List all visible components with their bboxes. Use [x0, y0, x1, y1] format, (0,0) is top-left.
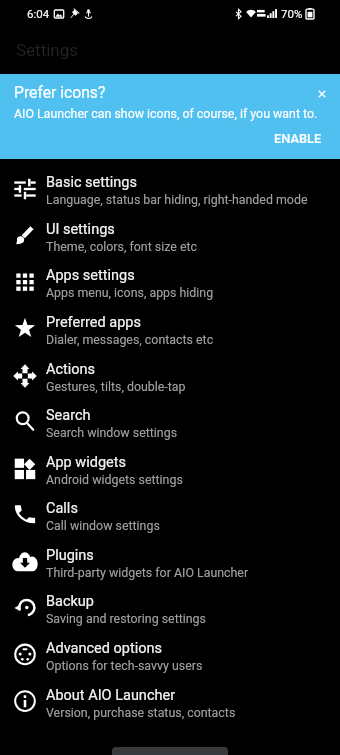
button[interactable]: About AIO Launcher — [0, 679, 340, 726]
staticText: App widgets — [46, 454, 126, 471]
staticText: Search window settings — [46, 425, 178, 440]
staticText: Prefer icons? — [14, 83, 106, 101]
staticText: UI settings — [46, 221, 115, 238]
staticText: Backup — [46, 593, 94, 610]
button[interactable]: Apps settings — [0, 259, 340, 306]
staticText: AIO Launcher can show icons, of course, … — [14, 106, 318, 121]
button[interactable]: Search — [0, 399, 340, 446]
staticText: Call window settings — [46, 518, 160, 533]
staticText: Apps settings — [46, 267, 135, 284]
staticText: About AIO Launcher — [46, 687, 176, 704]
staticText: Third-party widgets for AIO Launcher — [46, 565, 249, 580]
button[interactable]: App widgets — [0, 446, 340, 493]
staticText: Preferred apps — [46, 314, 141, 331]
button[interactable]: Preferred apps — [0, 306, 340, 353]
button[interactable]: Backup — [0, 585, 340, 632]
button[interactable]: Basic settings — [0, 166, 340, 213]
staticText: ENABLE — [274, 131, 322, 146]
staticText: Dialer, messages, contacts etc — [46, 332, 214, 347]
button[interactable]: UI settings — [0, 213, 340, 260]
button[interactable]: Advanced options — [0, 632, 340, 679]
staticText: Basic settings — [46, 174, 137, 191]
staticText: Search — [46, 407, 91, 424]
staticText: Advanced options — [46, 640, 162, 657]
button[interactable]: Dismiss — [313, 85, 331, 103]
button[interactable]: Actions — [0, 353, 340, 400]
staticText: Options for tech-savvy users — [46, 658, 203, 673]
button[interactable]: ENABLE — [266, 127, 330, 150]
button[interactable]: Calls — [0, 492, 340, 539]
staticText: Theme, colors, font size etc — [46, 239, 198, 254]
staticText: Android widgets settings — [46, 472, 183, 487]
staticText: Plugins — [46, 547, 94, 564]
staticText: Settings — [16, 40, 79, 60]
staticText: Apps menu, icons, apps hiding — [46, 285, 214, 300]
staticText: Language, status bar hiding, right-hande… — [46, 192, 308, 207]
staticText: Gestures, tilts, double-tap — [46, 379, 186, 394]
button[interactable]: Plugins — [0, 539, 340, 586]
staticText: Saving and restoring settings — [46, 611, 206, 626]
staticText: Actions — [46, 361, 96, 378]
staticText: 70% — [281, 7, 303, 20]
staticText: Version, purchase status, contacts — [46, 705, 236, 720]
staticText: Calls — [46, 500, 78, 517]
staticText: 6:04 — [27, 7, 50, 20]
